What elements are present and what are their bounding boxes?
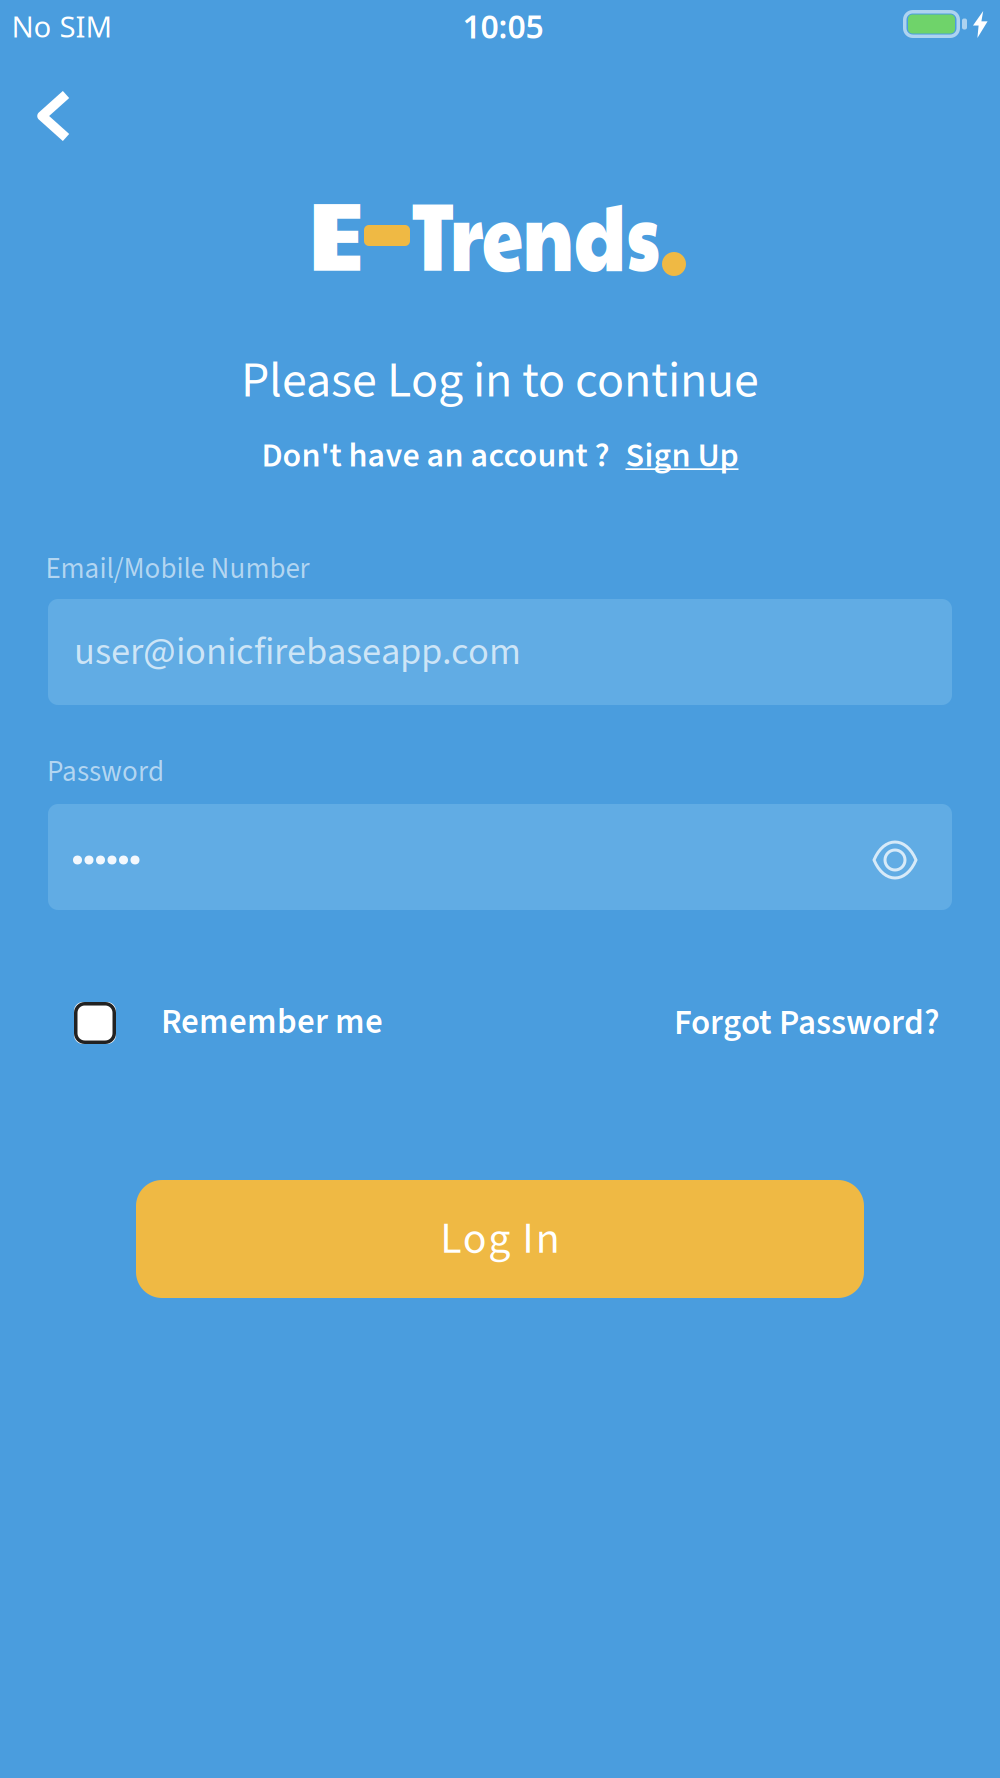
- staticText: Remember me: [161, 997, 383, 1047]
- staticText: Password: [47, 751, 164, 793]
- staticText: Email/Mobile Number: [45, 548, 309, 590]
- staticText: Sign Up: [625, 432, 738, 480]
- button[interactable]: Sign Up: [625, 432, 738, 480]
- staticText: No SIM: [11, 6, 112, 45]
- button[interactable]: Back: [37, 90, 71, 142]
- button[interactable]: Show password: [872, 840, 918, 880]
- staticText: Don't have an account ?: [261, 432, 609, 480]
- staticText: user@ionicfirebaseapp.com: [74, 625, 521, 679]
- button[interactable]: Forgot Password?: [674, 998, 940, 1048]
- staticText: Trends: [376, 164, 696, 298]
- staticText: Please Log in to continue: [241, 345, 759, 417]
- button[interactable]: Log In: [136, 1180, 864, 1298]
- staticText: 10:05: [462, 5, 543, 47]
- button[interactable]: Remember me: [74, 1002, 116, 1044]
- staticText: Log In: [440, 1208, 560, 1270]
- staticText: Forgot Password?: [674, 998, 940, 1048]
- staticText: E: [308, 164, 363, 298]
